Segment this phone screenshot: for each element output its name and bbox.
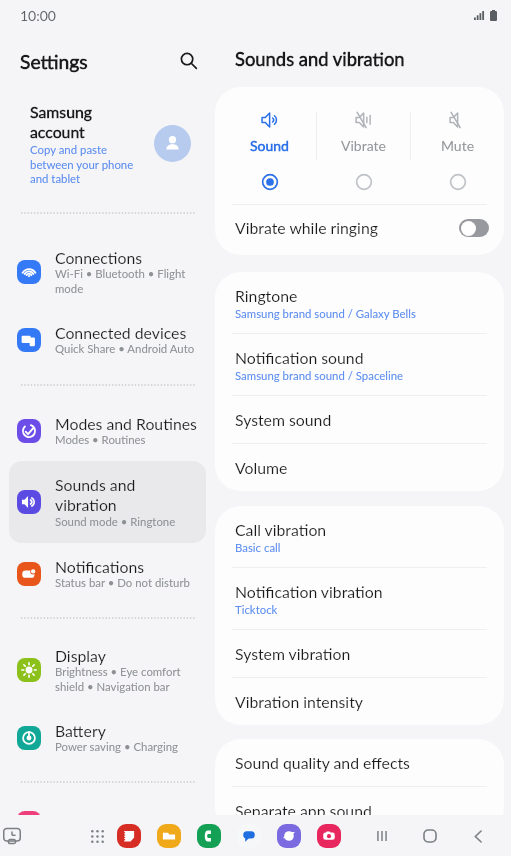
staticText: Battery	[55, 721, 106, 740]
staticText: Status bar • Do not disturb	[55, 576, 190, 590]
button[interactable]: Samsung Notes	[117, 824, 141, 848]
staticText: Vibration intensity	[235, 692, 363, 711]
button[interactable]: My Files	[157, 824, 181, 848]
button[interactable]: Battery	[9, 707, 206, 768]
staticText: Mute	[441, 137, 475, 154]
button[interactable]: Vibrate while ringing	[215, 205, 504, 255]
button[interactable]: Ringtone	[215, 272, 504, 333]
button[interactable]: Notification vibration	[215, 568, 504, 629]
staticText: Samsung brand sound / Galaxy Bells	[235, 307, 416, 321]
button[interactable]: Notification sound	[215, 334, 504, 395]
button[interactable]: Separate app sound	[215, 787, 504, 834]
staticText: Wallpaper and style	[55, 814, 192, 833]
staticText: Volume	[235, 458, 288, 477]
staticText: Modes and Routines	[55, 414, 197, 433]
button[interactable]: Connected devices	[9, 309, 206, 370]
staticText: Modes • Routines	[55, 433, 146, 447]
staticText: Notification vibration	[235, 582, 383, 601]
button[interactable]: Modes and Routines	[9, 400, 206, 461]
staticText: Copy and paste between your phone and ta…	[30, 143, 134, 185]
staticText: Samsung account	[30, 102, 92, 142]
staticText: System vibration	[235, 644, 351, 663]
button[interactable]: Mute	[411, 112, 504, 190]
staticText: Power saving • Charging	[55, 740, 178, 754]
button[interactable]: Connections	[9, 234, 206, 309]
staticText: Connected devices	[55, 323, 187, 342]
button[interactable]: Vibration intensity	[215, 678, 504, 725]
button[interactable]: Notifications	[9, 543, 206, 604]
staticText: Brightness • Eye comfort shield • Naviga…	[55, 665, 181, 693]
button[interactable]: System sound	[215, 396, 504, 443]
button[interactable]: Phone	[197, 824, 221, 848]
button[interactable]: Recent files	[2, 826, 22, 846]
button[interactable]: Samsung account	[0, 92, 215, 195]
staticText: Sound mode • Ringtone	[55, 515, 176, 529]
staticText: Notification sound	[235, 348, 364, 367]
staticText: Sounds and vibration	[55, 475, 136, 515]
button[interactable]: Display	[9, 632, 206, 707]
button[interactable]: Sound quality and effects	[215, 739, 504, 786]
staticText: Vibrate	[341, 137, 386, 154]
staticText: Display	[55, 646, 106, 665]
staticText: Ringtone	[235, 286, 298, 305]
button[interactable]: Recents	[373, 827, 391, 845]
button[interactable]: All apps	[85, 824, 109, 848]
staticText: Quick Share • Android Auto	[55, 342, 195, 356]
staticText: Settings	[20, 50, 88, 73]
button[interactable]: Messages	[237, 824, 261, 848]
button[interactable]: Sound	[223, 112, 316, 190]
staticText: Sound	[250, 137, 289, 154]
staticText: 10:00	[20, 7, 56, 24]
staticText: Separate app sound	[235, 801, 372, 820]
button[interactable]: Vibrate	[317, 112, 410, 190]
staticText: Notifications	[55, 557, 145, 576]
button[interactable]: Home	[421, 827, 439, 845]
staticText: Vibrate while ringing	[235, 218, 459, 237]
staticText: Basic call	[235, 541, 281, 555]
button[interactable]: Wallpaper and style	[9, 797, 206, 849]
button[interactable]: Camera	[317, 824, 341, 848]
staticText: Sounds and vibration	[235, 48, 405, 70]
staticText: Call vibration	[235, 520, 327, 539]
button[interactable]: Call vibration	[215, 506, 504, 567]
staticText: System sound	[235, 410, 332, 429]
staticText: Wi-Fi • Bluetooth • Flight mode	[55, 267, 186, 295]
button[interactable]: Search	[172, 44, 206, 78]
staticText: Connections	[55, 248, 143, 267]
button[interactable]: Volume	[215, 444, 504, 491]
staticText: Sound quality and effects	[235, 753, 410, 772]
button[interactable]: System vibration	[215, 630, 504, 677]
button[interactable]: Back	[469, 827, 487, 845]
staticText: Samsung brand sound / Spaceline	[235, 369, 404, 383]
button[interactable]: Sounds and vibration	[9, 461, 206, 543]
button[interactable]: Internet	[277, 824, 301, 848]
staticText: Ticktock	[235, 603, 278, 617]
